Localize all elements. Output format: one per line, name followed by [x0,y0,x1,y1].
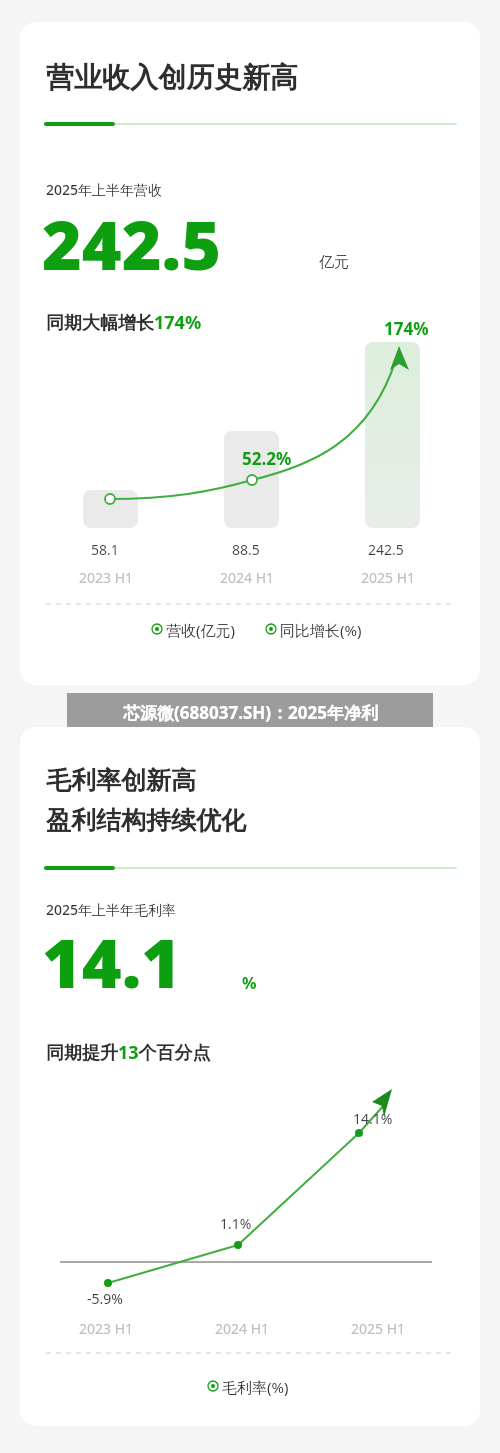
staticText: 同比增长(%) [280,620,362,640]
staticText: 1.1% [220,1214,252,1233]
staticText: 同期大幅增长174% [46,310,202,335]
staticText: 14.1% [353,1109,393,1128]
staticText: -5.9% [87,1289,123,1308]
staticText: 2024 H1 [215,1319,270,1338]
staticText: % [242,972,257,994]
button[interactable]: 毛利率创新高 盈利结构持续优化 [20,727,480,1426]
button[interactable]: 芯源微(688037.SH)：2025年净利 润同比下滑64.64% [67,693,433,760]
staticText: 2023 H1 [79,568,134,587]
staticText: 毛利率(%) [222,1377,289,1397]
staticText: 2025 H1 [351,1319,406,1338]
other: 同比增长图例 [266,624,276,634]
staticText: 52.2% [242,447,292,470]
staticText: 2025年上半年营收 [46,180,163,199]
staticText: 88.5 [232,540,260,559]
staticText: 同期提升13个百分点 [46,1040,211,1065]
staticText: 2023 H1 [79,1319,134,1338]
button[interactable]: 营业收入创历史新高 [20,22,480,685]
staticText: 58.1 [91,540,119,559]
staticText: 242.5 [42,197,222,290]
other: 营收图例 [152,624,162,634]
staticText: 营收(亿元) [166,620,236,640]
staticText: 14.1 [42,915,182,1008]
staticText: 营业收入创历史新高 [46,60,298,95]
staticText: 亿元 [319,253,349,272]
other: 毛利率图例 [208,1381,218,1391]
staticText: 芯源微(688037.SH)：2025年净利 润同比下滑64.64% [123,701,378,752]
staticText: 2024 H1 [220,568,275,587]
staticText: 2025年上半年毛利率 [46,900,177,919]
staticText: 毛利率创新高 盈利结构持续优化 [46,765,246,836]
staticText: 174% [384,317,429,340]
staticText: 242.5 [368,540,404,559]
staticText: 2025 H1 [361,568,416,587]
